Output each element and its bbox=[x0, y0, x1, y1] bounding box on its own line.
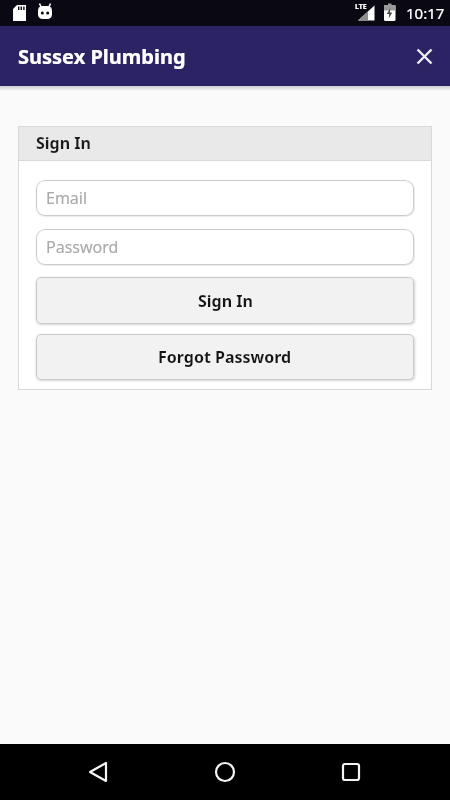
button[interactable]: Forgot Password bbox=[36, 334, 414, 380]
button[interactable] bbox=[300, 744, 450, 800]
button[interactable] bbox=[150, 744, 300, 800]
staticText: Sign In bbox=[198, 290, 253, 312]
staticText: Sussex Plumbing bbox=[18, 43, 186, 70]
staticText: LTE bbox=[355, 2, 367, 12]
staticText: Email bbox=[46, 187, 88, 209]
staticText: Forgot Password bbox=[158, 346, 292, 368]
staticText: 10:17 bbox=[406, 3, 445, 23]
button[interactable]: Sign In bbox=[36, 277, 414, 324]
button[interactable] bbox=[404, 36, 444, 76]
button[interactable] bbox=[0, 744, 150, 800]
staticText: Sign In bbox=[36, 132, 91, 154]
staticText: Password bbox=[46, 236, 119, 258]
button[interactable]: Email bbox=[36, 180, 414, 216]
button[interactable]: Password bbox=[36, 229, 414, 265]
